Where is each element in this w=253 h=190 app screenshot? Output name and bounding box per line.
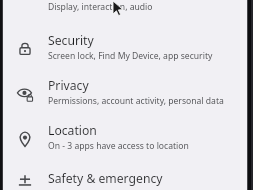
staticText: Privacy xyxy=(48,77,89,94)
staticText: Safety & emergency xyxy=(48,170,163,187)
staticText: Display, interaction, audio xyxy=(48,1,153,13)
button[interactable]: Safety and emergency xyxy=(3,162,247,190)
button[interactable]: Security xyxy=(3,27,247,72)
button[interactable]: Location xyxy=(3,117,247,162)
button[interactable]: Accessibility xyxy=(3,0,247,27)
staticText: On - 3 apps have access to location xyxy=(48,140,189,152)
staticText: Security xyxy=(48,32,94,49)
staticText: Permissions, account activity, personal … xyxy=(48,95,224,107)
button[interactable]: Privacy xyxy=(3,72,247,117)
staticText: Location xyxy=(48,122,97,139)
staticText: Screen lock, Find My Device, app securit… xyxy=(48,50,213,62)
other: Safety and emergency xyxy=(16,172,34,190)
